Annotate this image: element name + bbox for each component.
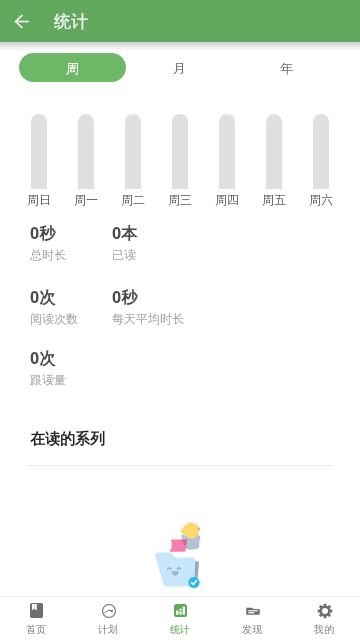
button[interactable]: 发现 (216, 597, 288, 640)
staticText: 年 (280, 60, 293, 76)
staticText: 统计 (54, 11, 88, 32)
staticText: 周六 (309, 192, 333, 207)
staticText: 首页 (26, 623, 46, 636)
button[interactable]: 我的 (288, 597, 360, 640)
staticText: 阅读次数 (30, 311, 78, 326)
button[interactable]: 统计 (144, 597, 216, 640)
button[interactable]: 计划 (72, 597, 144, 640)
staticText: 周一 (74, 192, 98, 207)
button[interactable]: 首页 (0, 597, 72, 640)
staticText: 0次 (30, 286, 56, 308)
staticText: 周 (66, 60, 79, 76)
staticText: 周日 (27, 192, 51, 207)
staticText: 周五 (262, 192, 286, 207)
staticText: 周二 (121, 192, 145, 207)
staticText: 0秒 (30, 222, 56, 244)
staticText: 已读 (112, 247, 136, 262)
staticText: 0本 (112, 222, 138, 244)
button[interactable]: 年 (233, 53, 340, 82)
button[interactable]: Back (5, 5, 37, 37)
button[interactable]: 周 (19, 53, 126, 82)
staticText: 0秒 (112, 286, 138, 308)
staticText: 0次 (30, 347, 56, 369)
staticText: 月 (173, 60, 186, 76)
staticText: 跟读量 (30, 372, 66, 387)
staticText: 统计 (170, 623, 190, 636)
staticText: 周三 (168, 192, 192, 207)
staticText: 总时长 (30, 247, 66, 262)
staticText: 我的 (314, 623, 334, 636)
staticText: 计划 (98, 623, 118, 636)
staticText: 发现 (242, 623, 262, 636)
staticText: 在读的系列 (30, 430, 105, 449)
staticText: 周四 (215, 192, 239, 207)
staticText: 每天平均时长 (112, 311, 184, 326)
button[interactable]: 月 (126, 53, 233, 82)
